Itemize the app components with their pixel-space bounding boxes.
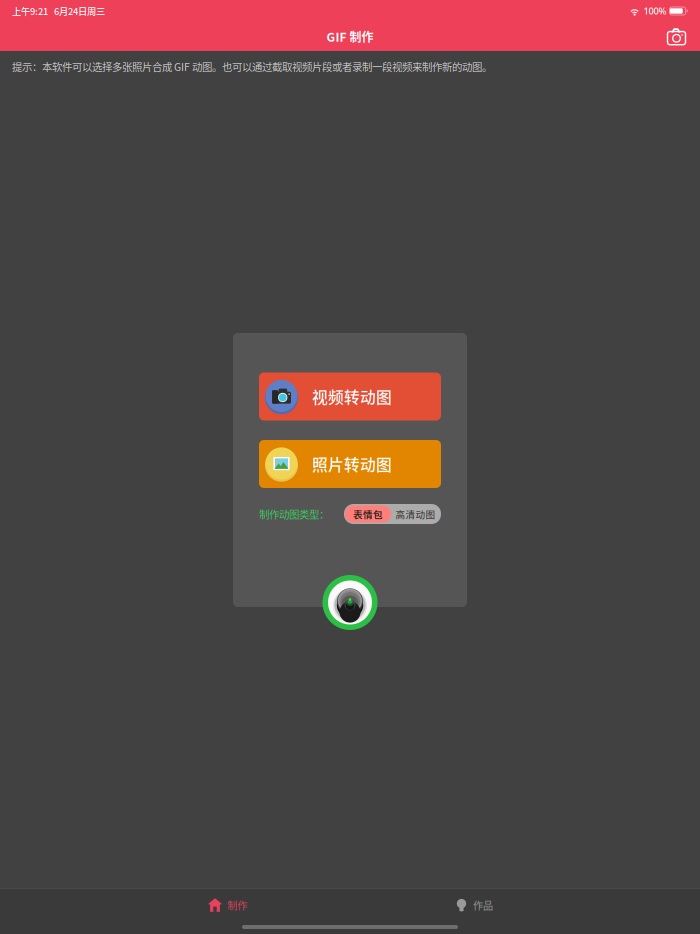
staticText: 作品: [473, 898, 493, 912]
staticText: 表情包: [353, 507, 383, 521]
staticText: 上午9:21: [12, 4, 48, 18]
button[interactable]: Record: [322, 574, 378, 630]
staticText: 制作: [227, 898, 247, 912]
staticText: 制作动图类型：: [259, 506, 329, 522]
button[interactable]: 表情包: [345, 505, 391, 522]
button[interactable]: 高清动图: [391, 505, 440, 522]
button[interactable]: 照片转动图: [259, 440, 441, 488]
staticText: 6月24日周三: [54, 4, 105, 18]
staticText: 高清动图: [395, 507, 435, 521]
staticText: 100%: [644, 5, 667, 17]
button[interactable]: 作品: [414, 890, 534, 920]
staticText: 视频转动图: [312, 385, 392, 408]
button[interactable]: 视频转动图: [259, 372, 441, 420]
staticText: 照片转动图: [312, 453, 392, 475]
button[interactable]: 制作: [167, 890, 287, 920]
button[interactable]: Camera: [659, 24, 694, 49]
staticText: 提示：本软件可以选择多张照片合成 GIF 动图。也可以通过截取视频片段或者录制一…: [12, 59, 492, 74]
staticText: GIF 制作: [326, 28, 373, 45]
